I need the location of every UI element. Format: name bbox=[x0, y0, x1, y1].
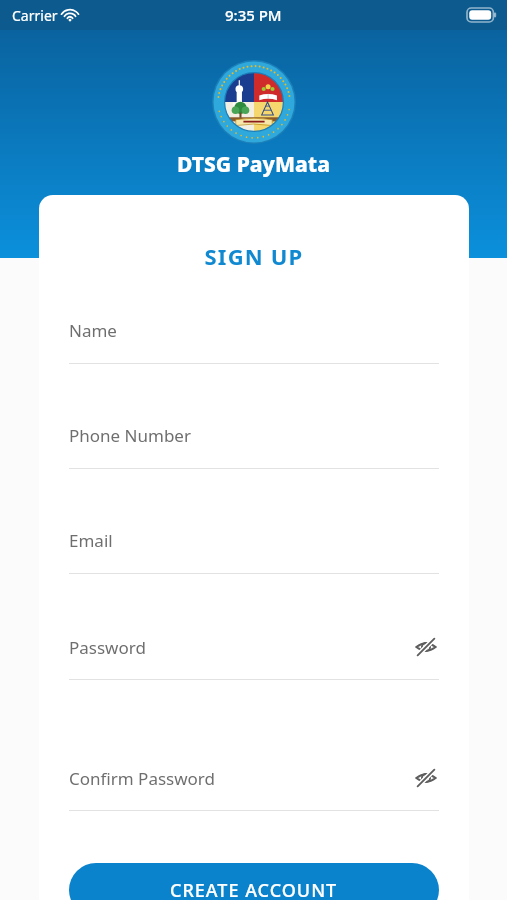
staticText: CREATE ACCOUNT bbox=[170, 878, 338, 900]
staticText: Name bbox=[69, 319, 439, 342]
button[interactable]: Show password bbox=[413, 634, 439, 660]
staticText: 9:35 PM bbox=[225, 5, 282, 25]
button[interactable]: Name bbox=[69, 319, 439, 364]
button[interactable]: Password bbox=[69, 634, 439, 680]
button[interactable]: CREATE ACCOUNT bbox=[69, 863, 439, 900]
staticText: Confirm Password bbox=[69, 767, 413, 790]
staticText: Password bbox=[69, 636, 413, 659]
staticText: Carrier bbox=[12, 6, 58, 25]
staticText: DTSG PayMata bbox=[177, 150, 331, 179]
staticText: SIGN UP bbox=[39, 241, 469, 271]
staticText: Phone Number bbox=[69, 424, 439, 447]
button[interactable]: Phone Number bbox=[69, 424, 439, 469]
button[interactable]: Show password bbox=[413, 765, 439, 791]
staticText: Email bbox=[69, 529, 439, 552]
button[interactable]: Confirm Password bbox=[69, 765, 439, 811]
button[interactable]: Email bbox=[69, 529, 439, 574]
